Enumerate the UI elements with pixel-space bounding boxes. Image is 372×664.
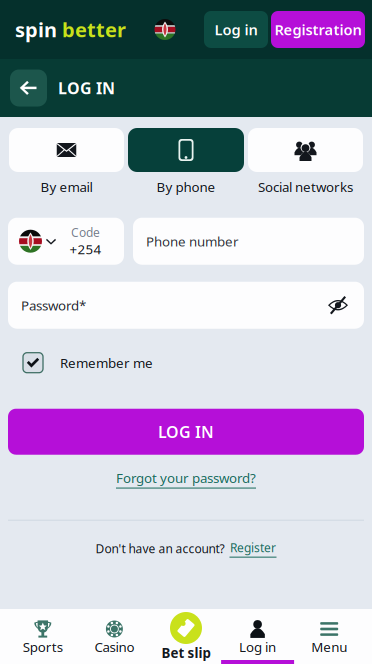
button[interactable]: Phone number: [133, 218, 364, 265]
button[interactable]: Log in: [222, 609, 293, 664]
staticText: Phone number: [146, 232, 239, 250]
staticText: Don't have an account?: [95, 541, 224, 557]
staticText: Bet slip: [161, 644, 210, 662]
button[interactable]: Social networks: [248, 128, 363, 196]
staticText: LOG IN: [158, 421, 214, 442]
staticText: spin: [15, 16, 57, 43]
staticText: Sports: [23, 638, 63, 656]
staticText: By phone: [156, 178, 215, 196]
staticText: By email: [40, 178, 92, 196]
button[interactable]: Menu: [293, 609, 365, 664]
staticText: +254: [69, 240, 101, 258]
button[interactable]: Back: [10, 69, 47, 106]
staticText: Menu: [311, 638, 347, 656]
button[interactable]: LOG IN: [8, 409, 364, 455]
button[interactable]: Registration: [271, 11, 365, 48]
button[interactable]: Sports: [7, 609, 79, 664]
staticText: Registration: [274, 20, 361, 39]
button[interactable]: Casino: [79, 609, 150, 664]
button[interactable]: Log in: [204, 11, 268, 48]
button[interactable]: Bet slip: [150, 609, 222, 664]
staticText: Register: [230, 540, 276, 556]
staticText: Social networks: [258, 178, 353, 196]
staticText: LOG IN: [58, 77, 115, 99]
button[interactable]: Register: [229, 540, 276, 558]
button[interactable]: Forgot your password?: [0, 469, 372, 489]
button[interactable]: By phone: [128, 128, 244, 196]
staticText: better: [57, 16, 126, 43]
button[interactable]: Remember me: [0, 347, 372, 379]
staticText: Forgot your password?: [116, 469, 256, 487]
button[interactable]: Password*: [8, 282, 364, 329]
staticText: Log in: [214, 20, 257, 39]
staticText: Remember me: [60, 354, 153, 372]
staticText: Log in: [239, 638, 276, 656]
button[interactable]: By email: [9, 128, 124, 196]
button[interactable]: Country: [154, 19, 175, 40]
staticText: Casino: [94, 638, 134, 656]
button[interactable]: Code: [8, 218, 124, 265]
staticText: Password*: [21, 296, 86, 314]
staticText: Code: [71, 224, 100, 240]
